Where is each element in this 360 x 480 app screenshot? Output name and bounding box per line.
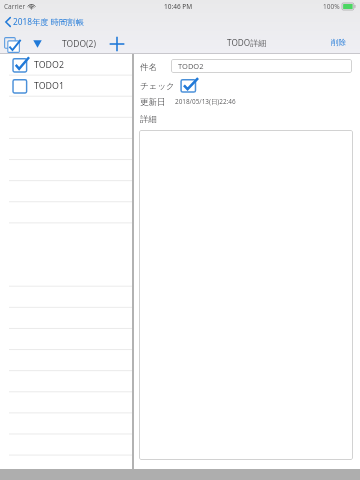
button[interactable]: TODO2: [0, 54, 132, 75]
button[interactable]: Select: [4, 37, 20, 53]
staticText: 削除: [331, 38, 346, 47]
button[interactable]: Add: [108, 36, 125, 52]
button[interactable]: TODO2: [171, 59, 352, 73]
staticText: チェック: [140, 81, 175, 92]
staticText: Carrier: [4, 2, 26, 11]
staticText: TODO2: [34, 59, 64, 71]
staticText: 件名: [140, 62, 157, 73]
button[interactable]: [139, 130, 353, 460]
button[interactable]: Filter: [33, 40, 42, 48]
staticText: TODO2: [178, 61, 204, 71]
staticText: 10:46 PM: [164, 2, 193, 11]
staticText: 更新日: [140, 97, 166, 108]
staticText: TODO詳細: [227, 37, 267, 48]
button[interactable]: Checked: [180, 78, 198, 93]
button[interactable]: 削除: [323, 34, 360, 51]
staticText: TODO1: [34, 80, 64, 92]
button[interactable]: TODO1: [0, 75, 132, 96]
button[interactable]: 2018年度 時間割帳: [0, 13, 84, 30]
staticText: 2018年度 時間割帳: [13, 16, 84, 27]
staticText: 100%: [323, 2, 340, 11]
staticText: TODO(2): [62, 38, 97, 50]
staticText: 詳細: [140, 114, 157, 125]
staticText: 2018/05/13(日)22:46: [175, 97, 236, 106]
